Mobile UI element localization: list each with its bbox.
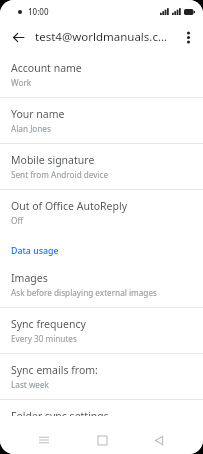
staticText: 10:00: [28, 6, 49, 17]
staticText: Alan Jones: [11, 123, 51, 134]
button[interactable]: Recent apps: [30, 426, 58, 454]
staticText: Mobile signature: [11, 153, 95, 167]
staticText: Folder sync settings: [11, 409, 109, 416]
button[interactable]: Home: [88, 426, 116, 454]
button[interactable]: Back: [6, 25, 30, 49]
staticText: Sync emails from:: [11, 363, 98, 377]
staticText: Last week: [11, 379, 49, 390]
button[interactable]: Account name: [0, 52, 203, 97]
staticText: Off: [11, 215, 24, 226]
button[interactable]: Your name: [0, 98, 203, 143]
button[interactable]: Folder sync settings: [0, 400, 203, 425]
button[interactable]: Images: [0, 262, 203, 307]
staticText: Every 30 minutes: [11, 333, 77, 344]
button[interactable]: Mobile signature: [0, 144, 203, 189]
button[interactable]: Sync emails from:: [0, 354, 203, 399]
staticText: Data usage: [11, 245, 59, 257]
staticText: test4@worldmanuals.com: [35, 29, 171, 45]
button[interactable]: Sync frequency: [0, 308, 203, 353]
button[interactable]: Back: [145, 426, 173, 454]
button[interactable]: Out of Office AutoReply: [0, 190, 203, 235]
staticText: Your name: [11, 107, 65, 121]
staticText: Sent from Android device: [11, 169, 109, 180]
button[interactable]: More options: [176, 25, 200, 49]
staticText: Images: [11, 271, 48, 285]
staticText: Account name: [11, 61, 82, 75]
staticText: Ask before displaying external images: [11, 287, 157, 298]
staticText: Sync frequency: [11, 317, 86, 331]
staticText: Out of Office AutoReply: [11, 199, 128, 213]
staticText: Work: [11, 77, 32, 88]
